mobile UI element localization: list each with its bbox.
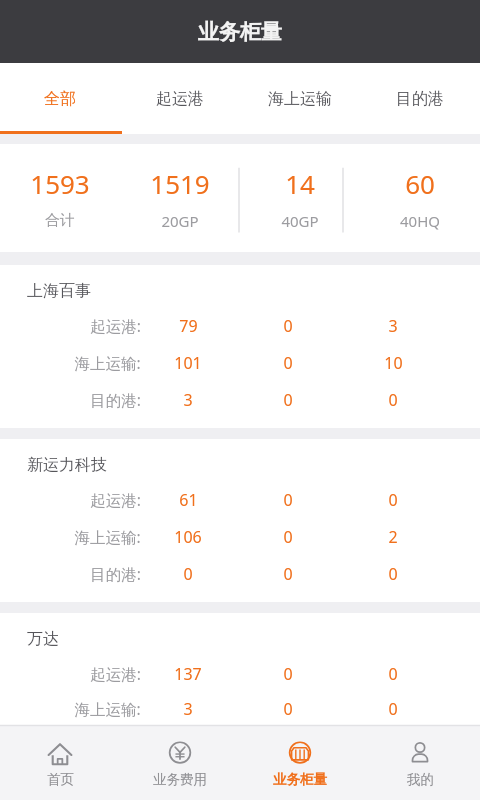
button[interactable]: 首页: [0, 725, 120, 800]
staticText: 60: [405, 166, 435, 201]
button[interactable]: 目的港: [360, 63, 480, 134]
button[interactable]: 我的: [360, 725, 480, 800]
button[interactable]: 海上运输: [240, 63, 360, 134]
staticText: 10: [384, 352, 403, 374]
staticText: 0: [283, 389, 293, 411]
staticText: 目的港:: [90, 389, 141, 410]
button[interactable]: 上海百事: [0, 265, 480, 428]
staticText: 20GP: [161, 211, 199, 231]
staticText: 业务柜量: [198, 19, 282, 45]
staticText: 137: [174, 663, 202, 685]
staticText: 合计: [45, 211, 75, 230]
staticText: 业务柜量: [273, 771, 327, 788]
button[interactable]: 新运力科技: [0, 439, 480, 602]
staticText: 0: [283, 698, 293, 720]
staticText: 3: [388, 315, 398, 337]
staticText: 业务费用: [153, 771, 207, 788]
staticText: 1593: [30, 166, 90, 201]
staticText: 0: [283, 563, 293, 585]
staticText: 起运港:: [90, 315, 141, 336]
staticText: 0: [283, 489, 293, 511]
staticText: 0: [388, 563, 398, 585]
button[interactable]: 60: [360, 144, 480, 252]
staticText: 0: [283, 663, 293, 685]
staticText: 我的: [407, 771, 434, 788]
staticText: 79: [179, 315, 198, 337]
button[interactable]: 14: [240, 144, 360, 252]
staticText: 1519: [150, 166, 210, 201]
staticText: 0: [283, 352, 293, 374]
staticText: 101: [174, 352, 202, 374]
staticText: 万达: [27, 629, 59, 649]
staticText: 0: [183, 563, 193, 585]
staticText: 海上运输:: [74, 352, 141, 373]
staticText: 2: [388, 526, 398, 548]
staticText: 起运港:: [90, 489, 141, 510]
staticText: 14: [285, 166, 315, 201]
staticText: 40HQ: [400, 211, 440, 231]
button[interactable]: 全部: [0, 63, 120, 134]
staticText: 0: [388, 698, 398, 720]
staticText: 起运港: [156, 89, 204, 109]
staticText: 海上运输:: [74, 698, 141, 719]
staticText: 新运力科技: [27, 455, 107, 475]
staticText: 0: [388, 489, 398, 511]
staticText: 3: [183, 389, 193, 411]
button[interactable]: 1519: [120, 144, 240, 252]
staticText: 海上运输: [268, 89, 332, 109]
staticText: 目的港: [396, 89, 444, 109]
staticText: 海上运输:: [74, 526, 141, 547]
staticText: 上海百事: [27, 281, 91, 301]
staticText: 106: [174, 526, 202, 548]
staticText: 首页: [47, 771, 74, 788]
staticText: 起运港:: [90, 663, 141, 684]
staticText: 40GP: [281, 211, 319, 231]
staticText: 目的港:: [90, 563, 141, 584]
staticText: 3: [183, 698, 193, 720]
staticText: 全部: [44, 89, 76, 109]
staticText: 61: [179, 489, 198, 511]
button[interactable]: 1593: [0, 144, 120, 252]
button[interactable]: 起运港: [120, 63, 240, 134]
staticText: 0: [388, 389, 398, 411]
button[interactable]: 业务费用: [120, 725, 240, 800]
button[interactable]: 业务柜量: [240, 725, 360, 800]
button[interactable]: 万达: [0, 613, 480, 725]
staticText: 0: [283, 315, 293, 337]
staticText: 0: [388, 663, 398, 685]
staticText: 0: [283, 526, 293, 548]
